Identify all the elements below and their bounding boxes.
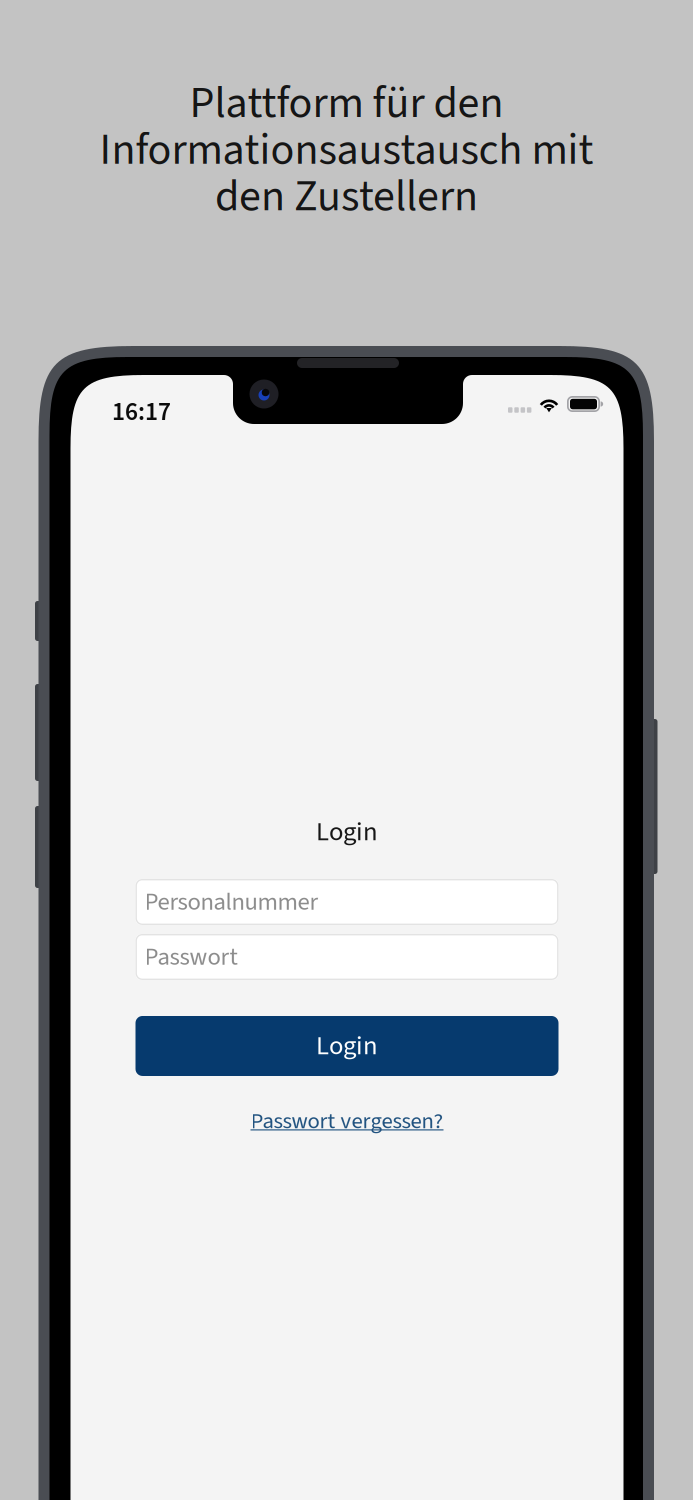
staticText: Passwort vergessen? <box>250 1105 443 1137</box>
button[interactable]: Passwort vergessen? <box>250 1105 443 1137</box>
staticText: Informationsaustausch mit <box>99 119 593 181</box>
staticText: Passwort <box>144 939 237 974</box>
staticText: Plattform für den <box>189 72 503 135</box>
staticText: 16:17 <box>112 394 171 430</box>
staticText: Personalnummer <box>144 884 318 919</box>
staticText: Login <box>316 1027 378 1065</box>
button[interactable]: Login <box>135 1016 558 1076</box>
staticText: Login <box>316 813 378 851</box>
staticText: den Zustellern <box>215 165 478 228</box>
